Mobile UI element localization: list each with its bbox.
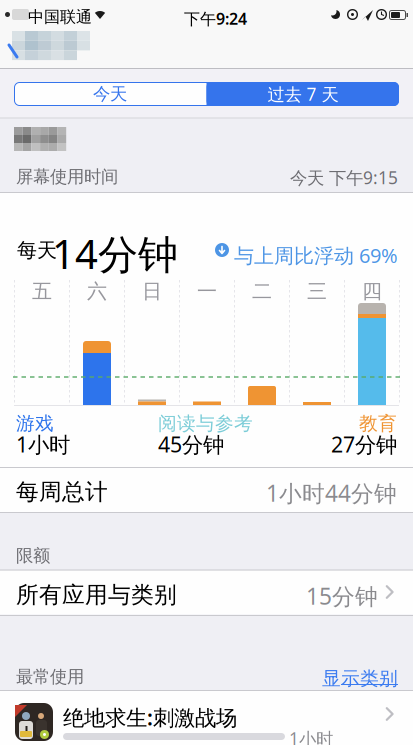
staticText: 今天	[93, 83, 127, 105]
staticText: 日	[142, 279, 162, 304]
staticText: 过去 7 天	[267, 82, 338, 105]
staticText: 一	[197, 279, 217, 304]
staticText: 阅读与参考	[158, 412, 253, 435]
staticText: 每天	[17, 238, 57, 263]
staticText: 最常使用	[16, 666, 84, 687]
staticText: 限额	[16, 545, 50, 566]
staticText: 今天 下午9:15	[290, 166, 398, 189]
staticText: 每周总计	[16, 478, 108, 506]
staticText: 1小时	[289, 727, 333, 745]
staticText: 三	[307, 279, 327, 304]
staticText: 五	[32, 279, 52, 304]
staticText: 六	[87, 279, 107, 304]
staticText: 绝地求生:刺激战场	[63, 703, 237, 731]
staticText: 14分钟	[52, 227, 178, 280]
staticText: 下午9:24	[184, 8, 247, 29]
staticText: 15分钟	[306, 581, 378, 611]
button[interactable]: 所有应用与类别	[0, 0, 413, 745]
staticText: 1小时44分钟	[266, 478, 397, 508]
staticText: 游戏	[16, 412, 54, 435]
button[interactable]: 今天	[0, 0, 192, 24]
staticText: 1小时	[16, 430, 70, 458]
staticText: 与上周比浮动 69%	[234, 242, 398, 269]
staticText: 中国联通	[28, 7, 92, 27]
staticText: 45分钟	[158, 430, 224, 458]
staticText: 二	[252, 279, 272, 304]
button[interactable]: 显示类别	[0, 0, 100, 23]
button[interactable]: 绝地求生:刺激战场	[0, 0, 413, 745]
staticText: 27分钟	[331, 430, 397, 458]
staticText: 屏幕使用时间	[16, 166, 118, 187]
staticText: 所有应用与类别	[16, 581, 177, 609]
button[interactable]	[0, 0, 413, 745]
button[interactable]: 过去 7 天	[0, 0, 192, 24]
staticText: 教育	[359, 412, 397, 435]
staticText: 显示类别	[322, 667, 398, 690]
staticText: 四	[362, 279, 382, 304]
